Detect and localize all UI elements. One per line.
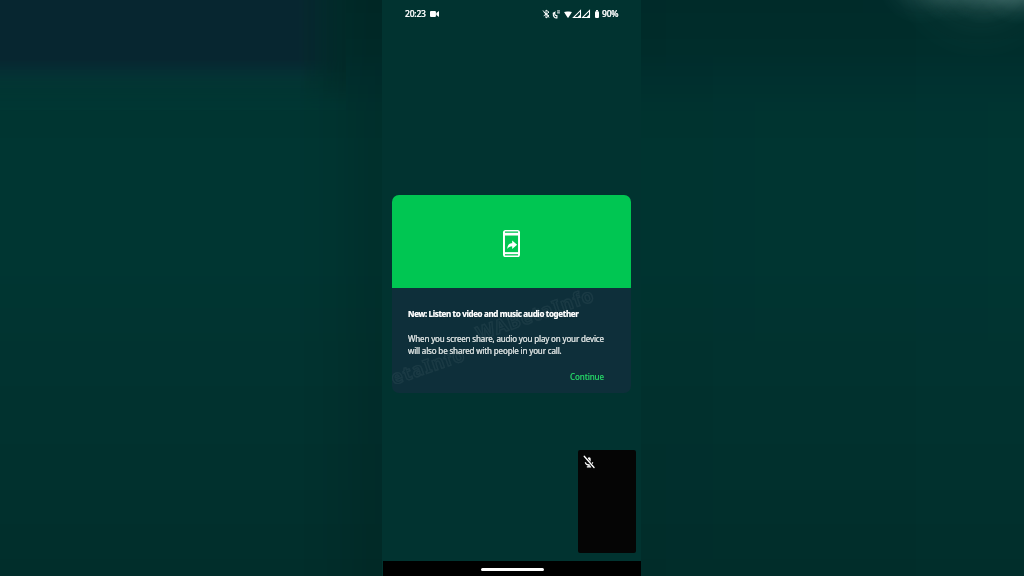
staticText: When you screen share, audio you play on… [408,333,613,356]
button[interactable]: Your camera preview [578,450,636,553]
staticText: 90% [602,8,619,20]
button[interactable]: Continue [544,366,631,387]
staticText: New: Listen to video and music audio tog… [408,308,579,319]
staticText: 20:23 [405,8,426,20]
staticText: Continue [570,371,605,382]
other: Microphone muted [583,456,595,468]
